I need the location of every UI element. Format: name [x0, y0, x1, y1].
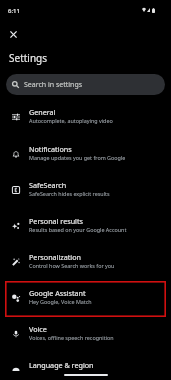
button[interactable]: Personal results	[0, 208, 171, 244]
staticText: Language & region	[29, 360, 94, 370]
staticText: Personalization	[29, 252, 81, 262]
staticText: SafeSearch	[29, 180, 67, 190]
button[interactable]: Language & region	[0, 352, 171, 380]
staticText: Voice	[29, 324, 47, 334]
button[interactable]: Google Assistant	[0, 280, 171, 316]
staticText: Hey Google, Voice Match	[29, 298, 92, 305]
staticText: General	[29, 107, 56, 117]
staticText: Personal results	[29, 216, 84, 226]
staticText: SafeSearch hides explicit results	[29, 190, 110, 197]
staticText: Control how Search works for you	[29, 262, 115, 269]
button[interactable]: Close	[5, 26, 22, 43]
button[interactable]: Personalization	[0, 244, 171, 280]
staticText: Autocomplete, autoplaying video	[29, 117, 113, 124]
staticText: Voices, offline speech recognition	[29, 334, 114, 341]
staticText: Results based on your Google Account	[29, 226, 127, 233]
staticText: Settings	[9, 51, 48, 65]
staticText: 6:11	[8, 7, 20, 15]
staticText: Search in settings	[24, 80, 83, 90]
button[interactable]: SafeSearch	[0, 172, 171, 208]
button[interactable]: Search in settings	[6, 74, 165, 95]
button[interactable]: Notifications	[0, 136, 171, 172]
button[interactable]: General	[0, 99, 171, 135]
staticText: Manage updates you get from Google	[29, 154, 126, 161]
button[interactable]: Voice	[0, 316, 171, 352]
staticText: Google Assistant	[29, 288, 86, 298]
staticText: Notifications	[29, 144, 72, 154]
